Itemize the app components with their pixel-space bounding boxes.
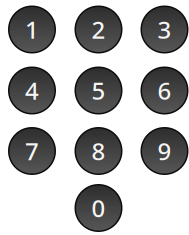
staticText: 9 xyxy=(157,135,171,167)
staticText: 5 xyxy=(91,75,105,106)
button[interactable]: 7 xyxy=(8,127,56,175)
button[interactable]: 2 xyxy=(74,5,122,53)
staticText: 3 xyxy=(157,14,171,45)
button[interactable]: 8 xyxy=(74,127,122,175)
button[interactable]: 1 xyxy=(8,5,56,53)
staticText: 8 xyxy=(91,135,105,167)
button[interactable]: 4 xyxy=(8,66,56,114)
button[interactable]: 6 xyxy=(140,66,188,114)
staticText: 0 xyxy=(91,192,105,224)
staticText: 2 xyxy=(91,14,105,45)
button[interactable]: 5 xyxy=(74,66,122,114)
button[interactable]: 3 xyxy=(140,5,188,53)
button[interactable]: 9 xyxy=(140,127,188,175)
staticText: 6 xyxy=(157,75,171,106)
button[interactable]: 0 xyxy=(74,184,122,232)
staticText: 7 xyxy=(25,135,39,167)
staticText: 1 xyxy=(25,14,39,45)
staticText: 4 xyxy=(25,75,39,106)
